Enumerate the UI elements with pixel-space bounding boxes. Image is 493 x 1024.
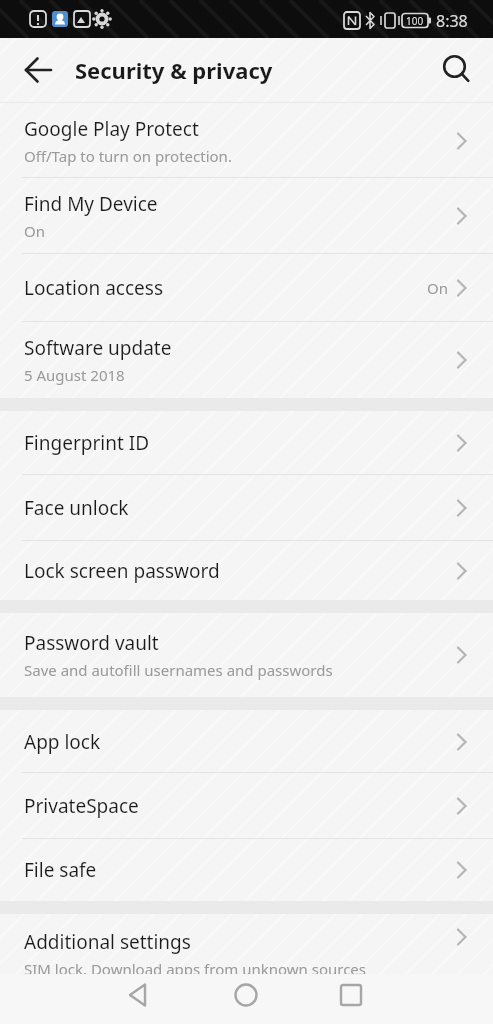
button[interactable]: Location access — [0, 254, 493, 322]
staticText: Fingerprint ID — [24, 430, 150, 456]
button[interactable] — [321, 975, 381, 1024]
staticText: Software update — [24, 335, 172, 361]
button[interactable] — [431, 38, 493, 102]
staticText: Save and autofill usernames and password… — [24, 660, 333, 680]
button[interactable]: Face unlock — [0, 475, 493, 541]
button[interactable] — [216, 975, 276, 1024]
staticText: 100 — [406, 14, 424, 28]
staticText: Security & privacy — [75, 55, 273, 85]
staticText: 8:38 — [436, 10, 468, 32]
staticText: Find My Device — [24, 191, 158, 217]
button[interactable]: Additional settings — [0, 914, 493, 974]
staticText: File safe — [24, 857, 97, 883]
staticText: Off/Tap to turn on protection. — [24, 146, 232, 166]
staticText: On — [427, 278, 448, 298]
staticText: Google Play Protect — [24, 116, 199, 142]
button[interactable]: Software update — [0, 322, 493, 398]
button[interactable] — [108, 975, 168, 1024]
button[interactable]: App lock — [0, 710, 493, 773]
staticText: App lock — [24, 729, 101, 755]
staticText: 5 August 2018 — [24, 365, 125, 385]
button[interactable]: Google Play Protect — [0, 103, 493, 178]
staticText: Face unlock — [24, 495, 129, 521]
staticText: Location access — [24, 275, 163, 301]
staticText: Password vault — [24, 630, 159, 656]
staticText: PrivateSpace — [24, 793, 139, 819]
staticText: Lock screen password — [24, 558, 220, 584]
staticText: On — [24, 221, 45, 241]
staticText: Additional settings — [24, 929, 191, 955]
button[interactable]: File safe — [0, 839, 493, 901]
button[interactable]: Fingerprint ID — [0, 411, 493, 475]
staticText: SIM lock. Download apps from unknown sou… — [24, 959, 367, 974]
button[interactable]: PrivateSpace — [0, 773, 493, 839]
button[interactable]: Lock screen password — [0, 541, 493, 600]
button[interactable]: Password vault — [0, 613, 493, 697]
button[interactable] — [0, 38, 60, 102]
button[interactable]: Find My Device — [0, 178, 493, 254]
